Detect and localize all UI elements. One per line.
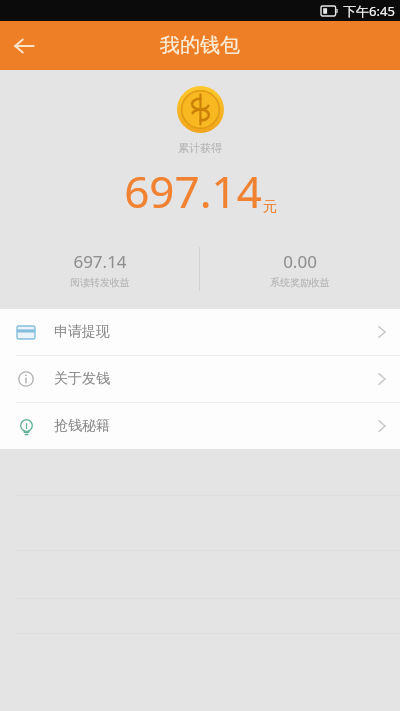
staticText: 元: [263, 198, 277, 216]
staticText: 关于发钱: [54, 370, 110, 388]
staticText: 系统奖励收益: [270, 276, 330, 289]
staticText: 抢钱秘籍: [54, 417, 110, 435]
staticText: 0.00: [283, 250, 317, 273]
staticText: 申请提现: [54, 323, 110, 341]
staticText: 697.14: [124, 161, 262, 221]
staticText: 下午6:45: [343, 2, 395, 20]
staticText: 阅读转发收益: [70, 276, 130, 289]
button[interactable]: 申请提现: [0, 309, 400, 355]
button[interactable]: Back: [0, 22, 48, 70]
staticText: 697.14: [73, 250, 127, 273]
staticText: 累计获得: [178, 141, 222, 155]
button[interactable]: 抢钱秘籍: [0, 403, 400, 449]
button[interactable]: 关于发钱: [0, 356, 400, 402]
staticText: 我的钱包: [160, 33, 240, 58]
